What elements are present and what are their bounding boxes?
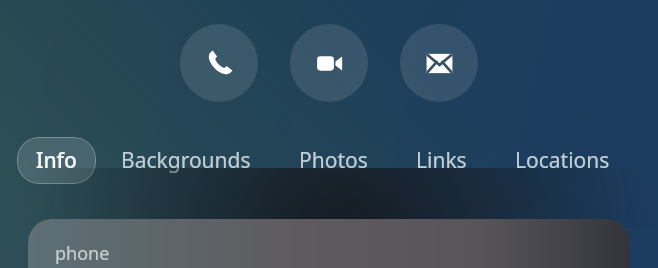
staticText: Backgrounds: [121, 146, 251, 175]
button[interactable]: Email: [400, 24, 478, 102]
button[interactable]: Backgrounds: [116, 137, 256, 184]
button[interactable]: Links: [411, 137, 472, 184]
button[interactable]: Locations: [510, 137, 615, 184]
button[interactable]: phone: [28, 219, 630, 268]
button[interactable]: Info: [17, 137, 96, 184]
staticText: Links: [416, 146, 467, 175]
button[interactable]: Photos: [294, 137, 373, 184]
button[interactable]: Call: [180, 24, 258, 102]
button[interactable]: Video call: [290, 24, 368, 102]
staticText: Photos: [299, 146, 368, 175]
staticText: phone: [55, 241, 110, 266]
staticText: Locations: [515, 146, 610, 175]
staticText: Info: [36, 146, 77, 175]
